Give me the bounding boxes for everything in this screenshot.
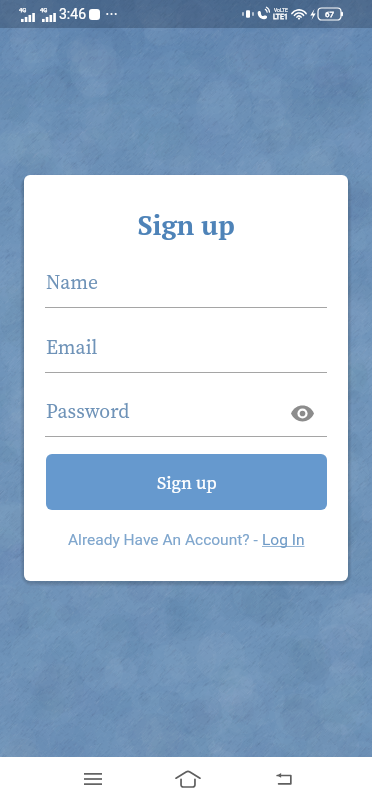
staticText: Email — [46, 334, 98, 361]
button[interactable]: Log In — [262, 531, 305, 549]
staticText: Name — [46, 269, 98, 296]
staticText: 3:46 — [59, 6, 86, 22]
button[interactable]: Back — [236, 757, 332, 800]
staticText: Sign up — [157, 470, 217, 495]
button[interactable]: Show password — [285, 396, 319, 430]
button[interactable]: Recents — [45, 757, 140, 800]
staticText: 4G — [40, 6, 48, 13]
staticText: 4G — [19, 6, 27, 13]
staticText: VoLTE — [274, 7, 288, 13]
staticText: Sign up — [24, 207, 348, 243]
button[interactable]: Sign up — [46, 454, 327, 510]
staticText: 67 — [325, 10, 334, 19]
staticText: LTE1 — [273, 13, 288, 21]
staticText: Already Have An Account? - — [68, 531, 262, 549]
staticText: Password — [46, 398, 130, 425]
button[interactable]: Home — [140, 757, 236, 800]
